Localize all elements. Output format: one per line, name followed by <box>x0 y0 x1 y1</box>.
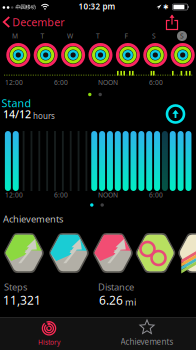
staticText: T <box>40 32 44 40</box>
staticText: F <box>124 32 127 40</box>
button[interactable]: Achievement <box>177 233 196 273</box>
staticText: W <box>67 32 73 40</box>
staticText: 11,321 <box>3 292 41 308</box>
staticText: 12:00 <box>5 78 23 87</box>
staticText: ✱ <box>163 3 169 11</box>
staticText: 10:32 pm <box>78 1 115 12</box>
staticText: Stand <box>1 96 31 110</box>
staticText: M <box>12 32 18 40</box>
staticText: 6:00 <box>149 78 163 87</box>
staticText: 6:00 <box>54 191 68 199</box>
button[interactable]: Achievement <box>92 233 133 273</box>
staticText: 14/12 <box>3 107 31 121</box>
button[interactable]: Achievement <box>48 233 89 273</box>
button[interactable]: Achievement <box>135 233 176 273</box>
button[interactable]: History <box>0 317 98 350</box>
button[interactable]: Thursday <box>88 43 112 67</box>
button[interactable]: Achievement <box>3 233 44 273</box>
staticText: Achievements <box>120 336 173 347</box>
button[interactable]: Achievements <box>98 317 196 350</box>
staticText: 12:00 <box>5 191 23 199</box>
button[interactable]: Share <box>165 14 178 29</box>
staticText: S <box>180 32 184 40</box>
button[interactable]: December <box>4 15 64 29</box>
staticText: 6.26 <box>99 292 123 308</box>
button[interactable]: Saturday <box>143 43 167 67</box>
button[interactable]: Tuesday <box>34 43 58 67</box>
staticText: Distance <box>98 281 134 293</box>
staticText: NOON <box>98 78 118 87</box>
staticText: hours <box>33 110 55 121</box>
staticText: T <box>96 32 100 40</box>
staticText: 6:00 <box>149 191 163 199</box>
staticText: Achievements <box>3 213 63 225</box>
button[interactable]: Monday <box>6 43 30 67</box>
staticText: mi <box>125 296 136 308</box>
staticText: Steps <box>4 281 27 293</box>
staticText: History <box>38 338 60 347</box>
button[interactable]: Stand goal <box>165 103 186 124</box>
staticText: December <box>12 15 64 29</box>
button[interactable]: Wednesday <box>61 43 85 67</box>
staticText: 中国移动 <box>15 4 35 10</box>
button[interactable]: Sunday <box>171 43 195 67</box>
staticText: 6:00 <box>54 78 68 87</box>
button[interactable]: Friday <box>116 43 140 67</box>
staticText: S <box>152 32 156 40</box>
staticText: NOON <box>98 191 118 199</box>
